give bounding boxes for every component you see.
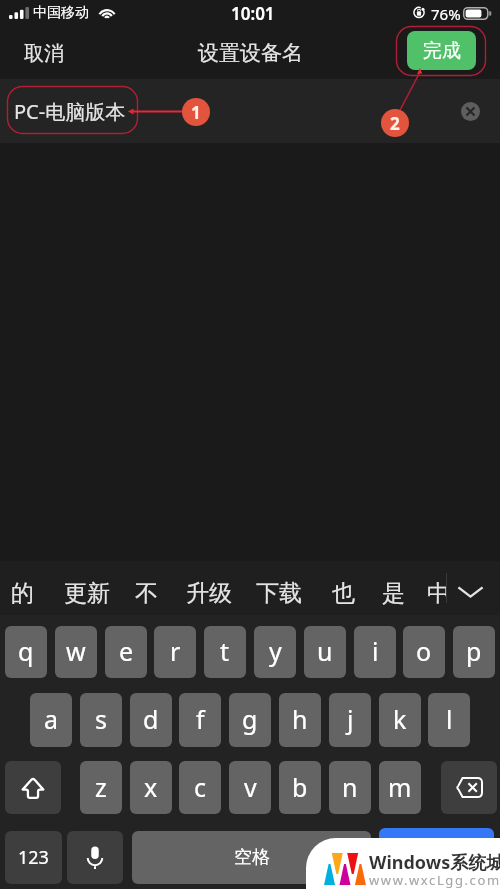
staticText: b: [292, 770, 308, 804]
staticText: 更新: [64, 579, 110, 608]
button[interactable]: Hide keyboard: [453, 575, 487, 609]
button[interactable]: q: [5, 626, 47, 678]
button[interactable]: 升级: [176, 571, 241, 615]
button[interactable]: e: [105, 626, 147, 678]
button[interactable]: z: [80, 761, 122, 814]
staticText: 取消: [24, 41, 64, 66]
button[interactable]: 下载: [246, 571, 311, 615]
button[interactable]: d: [130, 693, 172, 747]
button[interactable]: 完成: [407, 31, 476, 70]
button[interactable]: x: [130, 761, 172, 814]
staticText: j: [347, 702, 354, 736]
staticText: Windows系统城: [369, 850, 500, 875]
button[interactable]: r: [154, 626, 196, 678]
staticText: 升级: [186, 579, 232, 608]
button[interactable]: j: [329, 693, 371, 747]
staticText: h: [292, 702, 308, 736]
staticText: 设置设备名: [198, 40, 303, 66]
staticText: www.wxcLgg.com: [369, 871, 500, 889]
staticText: l: [446, 702, 453, 736]
button[interactable]: n: [329, 761, 371, 814]
staticText: d: [143, 702, 159, 736]
button[interactable]: k: [379, 693, 421, 747]
staticText: 2: [390, 112, 400, 135]
button[interactable]: 取消: [8, 33, 80, 74]
staticText: 10:01: [231, 2, 275, 25]
button[interactable]: s: [80, 693, 122, 747]
staticText: 也: [332, 579, 355, 608]
staticText: v: [244, 770, 257, 804]
button[interactable]: o: [403, 626, 445, 678]
button[interactable]: Voice input: [67, 831, 123, 884]
button[interactable]: c: [179, 761, 221, 814]
button[interactable]: i: [354, 626, 396, 678]
staticText: 中: [427, 579, 446, 608]
button[interactable]: 是: [372, 571, 414, 615]
button[interactable]: m: [379, 761, 421, 814]
button[interactable]: Shift: [5, 761, 61, 814]
staticText: 下载: [256, 579, 302, 608]
button[interactable]: 中: [417, 571, 446, 615]
staticText: s: [95, 702, 107, 736]
staticText: w: [66, 634, 86, 668]
staticText: a: [44, 702, 59, 736]
button[interactable]: g: [229, 693, 271, 747]
button[interactable]: 换行: [379, 828, 494, 884]
staticText: k: [393, 702, 407, 736]
button[interactable]: w: [55, 626, 97, 678]
staticText: c: [194, 770, 207, 804]
button[interactable]: 123: [5, 831, 62, 884]
button[interactable]: l: [428, 693, 470, 747]
button[interactable]: 也: [322, 571, 364, 615]
staticText: p: [466, 634, 482, 668]
staticText: m: [388, 770, 412, 804]
button[interactable]: 更新: [54, 571, 119, 615]
button[interactable]: a: [30, 693, 72, 747]
button[interactable]: u: [304, 626, 346, 678]
staticText: e: [119, 634, 134, 668]
staticText: 中国移动: [33, 4, 89, 22]
staticText: 完成: [423, 39, 461, 63]
staticText: z: [95, 770, 107, 804]
button[interactable]: p: [453, 626, 495, 678]
staticText: 是: [382, 579, 405, 608]
staticText: r: [170, 634, 181, 668]
button[interactable]: 不: [125, 571, 167, 615]
staticText: i: [372, 634, 379, 668]
button[interactable]: 空格: [132, 831, 371, 884]
button[interactable]: b: [279, 761, 321, 814]
staticText: 的: [11, 579, 34, 608]
staticText: 1: [191, 101, 201, 124]
staticText: u: [317, 634, 333, 668]
staticText: 不: [135, 579, 158, 608]
button[interactable]: v: [229, 761, 271, 814]
staticText: x: [144, 770, 158, 804]
staticText: 76%: [431, 4, 461, 24]
staticText: q: [18, 634, 34, 668]
staticText: f: [196, 702, 205, 736]
staticText: g: [242, 702, 258, 736]
staticText: n: [342, 770, 358, 804]
button[interactable]: y: [254, 626, 296, 678]
button[interactable]: t: [204, 626, 246, 678]
staticText: 空格: [234, 846, 270, 869]
staticText: o: [416, 634, 432, 668]
button[interactable]: Backspace: [441, 761, 497, 814]
button[interactable]: 的: [1, 571, 43, 615]
staticText: 换行: [419, 845, 455, 868]
staticText: t: [220, 634, 230, 668]
staticText: PC-电脑版本: [14, 98, 126, 125]
button[interactable]: Clear text: [457, 98, 483, 124]
button[interactable]: h: [279, 693, 321, 747]
button[interactable]: f: [179, 693, 221, 747]
staticText: 123: [18, 845, 49, 870]
staticText: y: [269, 634, 282, 668]
